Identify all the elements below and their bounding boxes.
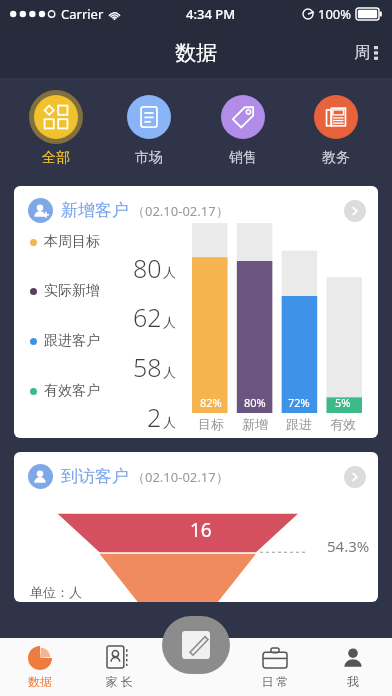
staticText: 跟进 [286,416,312,432]
staticText: 82% [200,395,222,410]
staticText: 全部 [42,149,70,167]
staticText: 人 [163,414,176,430]
staticText: 新增客户 [61,200,129,221]
staticText: 80 [133,251,162,282]
staticText: 本周目标 [44,233,100,251]
staticText: 家 长 [105,673,133,689]
button[interactable]: Open details [344,466,366,488]
staticText: 4:34 PM [186,5,236,23]
staticText: 实际新增 [44,282,100,300]
staticText: 有效客户 [44,382,100,400]
other: More options [374,45,378,61]
staticText: 58 [133,350,162,382]
button[interactable]: 我 [314,638,392,696]
button[interactable]: 到访客户 [14,452,378,602]
staticText: 人 [163,314,176,330]
staticText: 周 [354,43,370,63]
staticText: 72% [288,395,310,410]
staticText: 数据 [175,40,217,66]
button[interactable]: 教务 [299,86,373,171]
staticText: 数据 [28,674,52,689]
button[interactable]: 日 常 [236,638,314,696]
button[interactable]: Open details [344,200,366,222]
staticText: 100% [318,5,352,23]
button[interactable]: 全部 [19,86,93,171]
staticText: 到访客户 [61,466,129,487]
staticText: 目标 [198,416,224,432]
button[interactable]: 销售 [206,86,280,171]
staticText: （02.10-02.17） [132,468,229,486]
button[interactable]: 新增客户 [14,186,378,438]
staticText: 有效 [330,416,356,432]
staticText: 80% [244,395,266,410]
staticText: 5% [335,395,351,410]
button[interactable]: Compose [162,616,230,674]
staticText: 2 [147,400,162,432]
staticText: 新增 [242,416,268,432]
button[interactable]: 周 [348,37,384,69]
staticText: Carrier [61,5,104,23]
button[interactable]: 家 长 [79,638,158,696]
staticText: 销售 [229,149,257,167]
staticText: 16 [190,517,212,543]
staticText: 单位：人 [30,584,82,600]
staticText: 人 [163,264,176,280]
staticText: 教务 [322,149,350,167]
button[interactable]: 市场 [112,86,186,171]
staticText: 我 [347,674,359,689]
button[interactable]: 数据 [0,638,79,696]
staticText: 跟进客户 [44,332,100,350]
staticText: 人 [163,364,176,380]
staticText: 54.3% [327,536,370,556]
staticText: 市场 [135,149,163,167]
staticText: 日 常 [261,673,289,689]
staticText: 62 [133,300,162,332]
staticText: （02.10-02.17） [132,202,229,220]
